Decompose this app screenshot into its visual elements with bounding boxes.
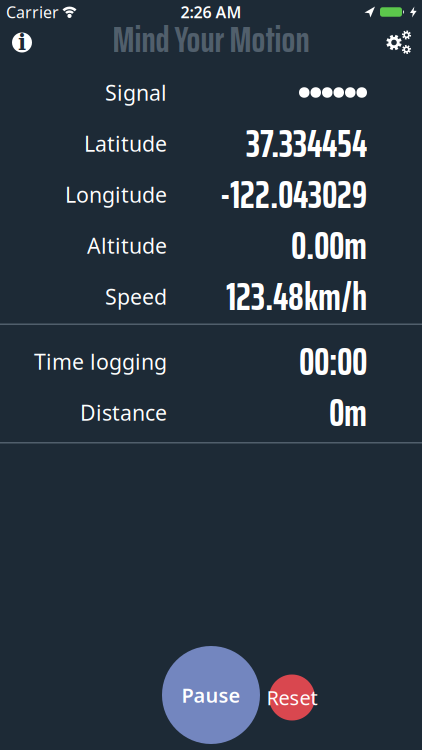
staticText: Mind Your Motion [112,11,309,68]
staticText: 0m [329,382,367,443]
staticText: Altitude [87,231,167,260]
staticText: Distance [80,398,167,427]
staticText: 37.334454 [246,113,367,174]
staticText: Latitude [84,129,167,158]
staticText: Time logging [34,347,167,376]
button[interactable]: Reset [266,674,317,720]
staticText: -122.043029 [220,164,367,225]
button[interactable]: Info [12,30,32,55]
staticText: Signal [105,78,167,107]
button[interactable]: Settings [382,27,414,57]
staticText: 123.48km/h [226,266,367,327]
staticText: Pause [181,682,240,708]
staticText: Speed [105,282,167,311]
button[interactable]: Pause [162,646,260,744]
staticText: Reset [266,684,317,711]
staticText: Carrier [6,1,59,23]
staticText: 0.00m [291,215,367,276]
staticText: Longitude [65,180,167,209]
staticText: i [18,30,26,55]
staticText: 2:26 AM [180,1,241,23]
staticText: 00:00 [299,331,367,392]
